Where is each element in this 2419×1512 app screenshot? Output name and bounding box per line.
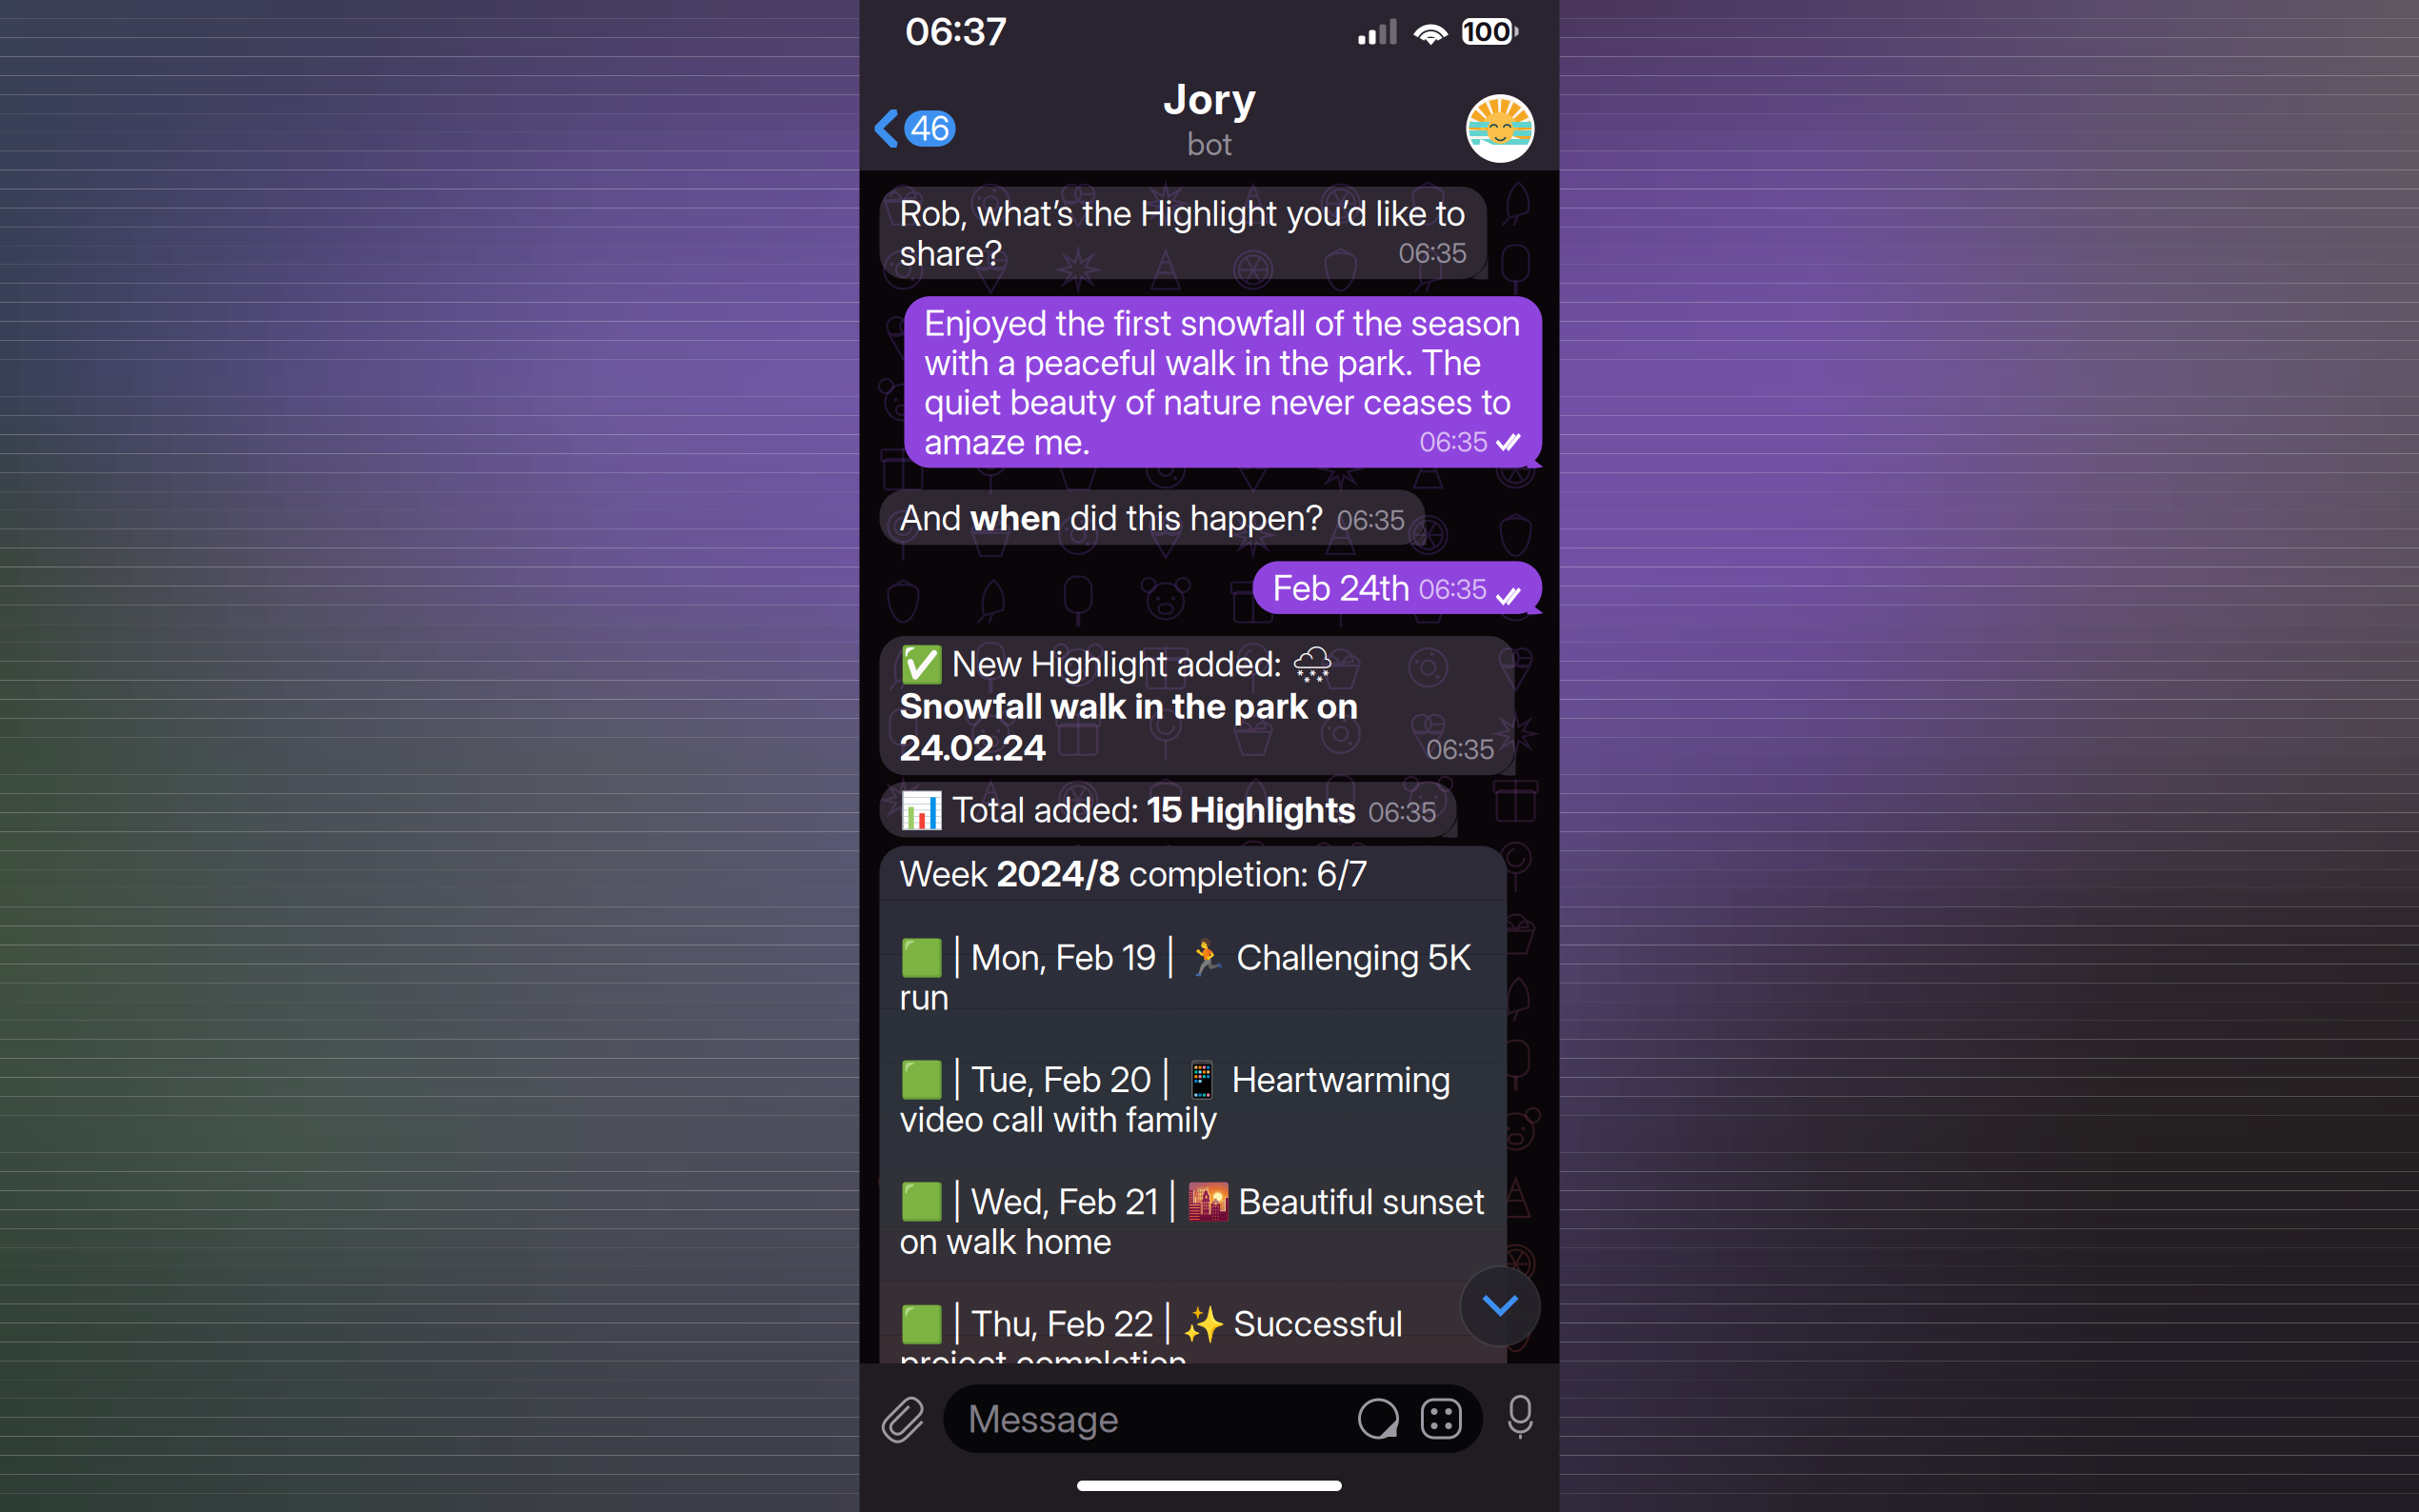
staticText: 🟩 | Wed, Feb 21 | 🌇 Beautiful sunset on … bbox=[900, 1182, 1485, 1261]
staticText: 06:35 bbox=[1399, 237, 1467, 270]
staticText: 🟩 | Tue, Feb 20 | 📱 Heartwarming video c… bbox=[900, 1059, 1451, 1139]
staticText: 06:35 bbox=[1368, 796, 1437, 829]
staticText: Enjoyed the first snowfall of the season… bbox=[924, 303, 1520, 461]
staticText: 📊 Total added: 15 Highlights bbox=[900, 789, 1356, 831]
button[interactable]: Stickers bbox=[1359, 1400, 1398, 1438]
staticText: 06:35 bbox=[1337, 504, 1405, 536]
staticText: ✅ New Highlight added: 🌨 Snowfall walk i… bbox=[900, 643, 1359, 769]
button[interactable]: Chat info bbox=[1466, 94, 1559, 163]
staticText: Rob, what’s the Highlight you’d like to … bbox=[900, 193, 1465, 272]
staticText: Feb 24th bbox=[1273, 568, 1410, 607]
staticText: 46 bbox=[910, 109, 950, 148]
staticText: 🟩 | Thu, Feb 22 | ✨ Successful project c… bbox=[900, 1304, 1403, 1383]
button[interactable]: Scroll to bottom bbox=[1460, 1266, 1540, 1346]
staticText: 06:35 bbox=[1419, 573, 1487, 606]
staticText: 🟩 | Mon, Feb 19 | 🏃 Challenging 5K run bbox=[900, 937, 1472, 1017]
staticText: 100 bbox=[1463, 15, 1511, 48]
staticText: 06:35 bbox=[1419, 426, 1488, 458]
staticText: bot bbox=[1187, 124, 1232, 163]
staticText: 06:35 bbox=[1426, 733, 1495, 766]
staticText: Jory bbox=[1163, 74, 1256, 124]
staticText: 06:37 bbox=[905, 8, 1007, 54]
staticText: Week 2024/8 completion: 6/7 bbox=[900, 853, 1367, 894]
staticText: And when did this happen? bbox=[900, 496, 1324, 538]
button[interactable]: Back to chat list bbox=[860, 100, 956, 157]
button[interactable]: Bot commands bbox=[1398, 1400, 1483, 1438]
staticText: Message bbox=[968, 1396, 1119, 1442]
button[interactable]: Record voice message bbox=[1483, 1396, 1559, 1442]
button[interactable]: Attach file bbox=[860, 1394, 943, 1443]
